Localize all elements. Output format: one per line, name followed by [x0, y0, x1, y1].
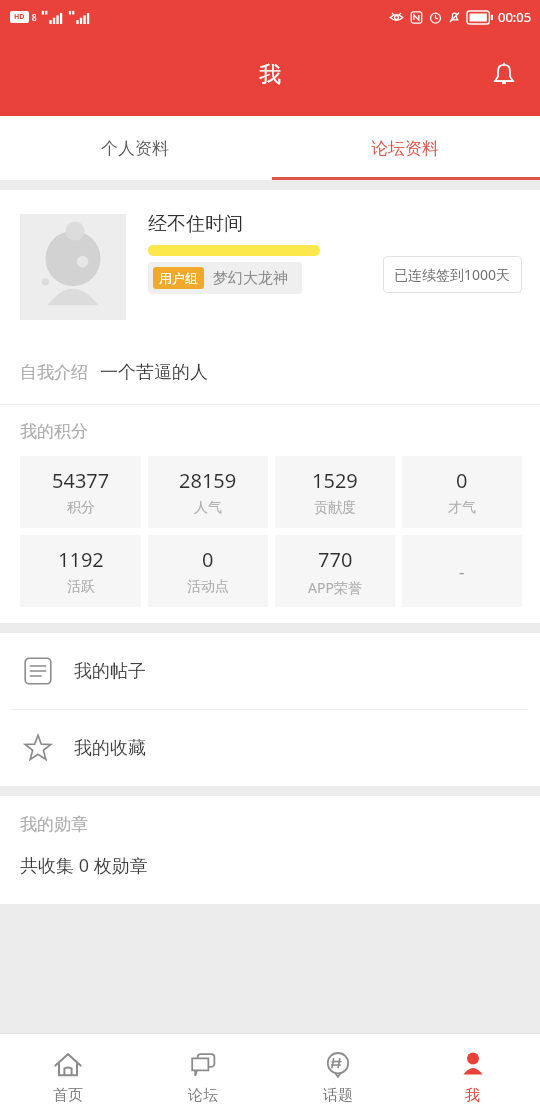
staticText: 8	[32, 12, 37, 23]
button[interactable]: 首页	[0, 1034, 135, 1120]
button[interactable]: 54377	[20, 456, 141, 528]
button[interactable]: 我的收藏	[0, 710, 540, 786]
button[interactable]: 论坛	[135, 1034, 270, 1120]
staticText: 我的积分	[20, 421, 88, 442]
staticText: 用户组	[159, 270, 198, 286]
button[interactable]: 我的帖子	[0, 633, 540, 709]
staticText: 话题	[323, 1086, 353, 1105]
staticText: 我的帖子	[74, 660, 146, 683]
button[interactable]: 0	[402, 456, 522, 528]
staticText: 梦幻大龙神	[213, 269, 288, 288]
staticText: 论坛资料	[371, 138, 439, 159]
button[interactable]: 论坛资料	[270, 116, 540, 180]
button[interactable]: 个人资料	[0, 116, 270, 180]
staticText: 00:05	[498, 8, 532, 26]
button[interactable]: 0	[148, 535, 268, 607]
staticText: 共收集 0 枚勋章	[20, 853, 148, 878]
staticText: 我	[465, 1086, 480, 1105]
staticText: 我的勋章	[20, 814, 88, 835]
staticText: 我的收藏	[74, 737, 146, 760]
staticText: 经不住时间	[148, 212, 243, 236]
staticText: 已连续签到1000天	[394, 265, 511, 284]
button[interactable]: 话题	[270, 1034, 405, 1120]
button[interactable]: 770	[275, 535, 395, 607]
staticText: APP荣誉	[308, 578, 362, 597]
staticText: 1192	[58, 546, 104, 573]
staticText: 770	[318, 546, 353, 573]
button[interactable]: Avatar	[20, 214, 126, 320]
staticText: 28159	[179, 467, 237, 494]
staticText: 一个苦逼的人	[100, 361, 208, 384]
button[interactable]: 已连续签到1000天	[383, 256, 522, 293]
staticText: 自我介绍	[20, 362, 88, 383]
staticText: 贡献度	[314, 499, 356, 517]
button[interactable]: 1529	[275, 456, 395, 528]
staticText: 人气	[194, 499, 222, 517]
staticText: 0	[202, 546, 214, 573]
staticText: 积分	[67, 499, 95, 517]
staticText: 才气	[448, 499, 476, 517]
staticText: -	[459, 560, 465, 583]
staticText: 个人资料	[101, 138, 169, 159]
staticText: 0	[456, 467, 468, 494]
staticText: 首页	[53, 1086, 83, 1105]
button[interactable]: 1192	[20, 535, 141, 607]
staticText: 论坛	[188, 1086, 218, 1105]
staticText: 我	[259, 61, 281, 89]
staticText: HD	[14, 12, 25, 22]
button[interactable]: Notifications	[480, 51, 528, 99]
staticText: 活动点	[187, 578, 229, 596]
button[interactable]: 我	[405, 1034, 540, 1120]
staticText: 1529	[312, 467, 358, 494]
button[interactable]: 28159	[148, 456, 268, 528]
staticText: 54377	[52, 467, 110, 494]
staticText: 活跃	[67, 578, 95, 596]
